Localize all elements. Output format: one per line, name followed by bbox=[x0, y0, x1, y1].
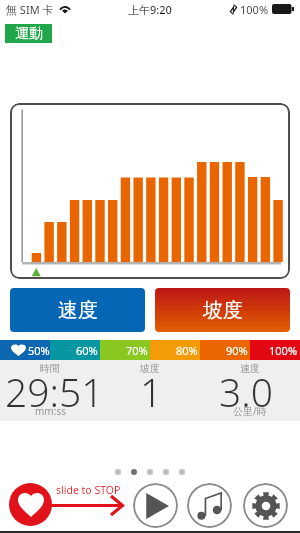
staticText: 上午9:20 bbox=[128, 2, 172, 17]
staticText: 50% bbox=[28, 343, 50, 358]
staticText: 時間 bbox=[40, 362, 60, 375]
button[interactable]: 坡度 bbox=[155, 288, 290, 332]
staticText: 運動 bbox=[15, 25, 43, 43]
staticText: 3.0 bbox=[219, 365, 274, 418]
staticText: 1 bbox=[140, 365, 163, 418]
staticText: 60% bbox=[76, 343, 98, 358]
staticText: 70% bbox=[126, 343, 148, 358]
staticText: 80% bbox=[176, 343, 198, 358]
staticText: slide to STOP bbox=[56, 483, 121, 497]
staticText: mm:ss bbox=[35, 404, 66, 418]
button[interactable]: Slide to stop bbox=[9, 483, 52, 526]
button[interactable]: 運動 bbox=[5, 24, 52, 43]
staticText: 90% bbox=[226, 343, 248, 358]
button[interactable]: 速度 bbox=[10, 288, 145, 332]
staticText: 29:51 bbox=[5, 365, 104, 418]
button[interactable]: Music bbox=[187, 483, 232, 528]
staticText: 無 SIM 卡 bbox=[6, 2, 54, 17]
staticText: 公里/時 bbox=[233, 404, 267, 418]
staticText: 100% bbox=[269, 343, 298, 358]
button[interactable]: Play bbox=[133, 483, 178, 528]
staticText: 100% bbox=[240, 2, 269, 17]
staticText: 速度 bbox=[58, 298, 98, 323]
staticText: 坡度 bbox=[203, 298, 243, 323]
staticText: 速度 bbox=[240, 362, 260, 375]
staticText: 坡度 bbox=[140, 362, 160, 375]
button[interactable]: Settings bbox=[243, 483, 288, 528]
